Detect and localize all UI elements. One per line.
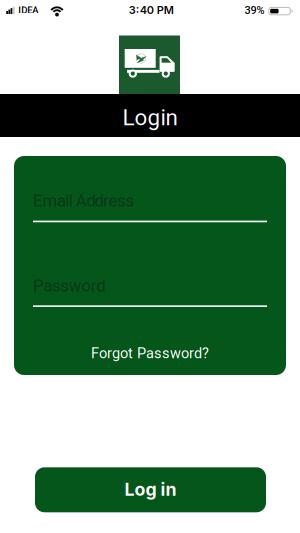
button[interactable]: Log in (35, 467, 266, 512)
secureTextField[interactable]: Password (33, 278, 267, 308)
staticText: Password (33, 276, 105, 296)
textField[interactable]: Email Address (33, 193, 267, 223)
staticText: Email Address (33, 193, 184, 223)
staticText: Log in (124, 479, 176, 500)
staticText: Forgot Password? (91, 345, 209, 362)
staticText: Login (122, 105, 177, 131)
staticText: Email Address (33, 191, 134, 211)
staticText: 39% (244, 4, 264, 17)
staticText: 3:40 PM (129, 3, 174, 16)
button[interactable]: Forgot Password? (91, 345, 209, 362)
staticText: Password (33, 278, 137, 308)
staticText: IDEA (18, 5, 38, 16)
